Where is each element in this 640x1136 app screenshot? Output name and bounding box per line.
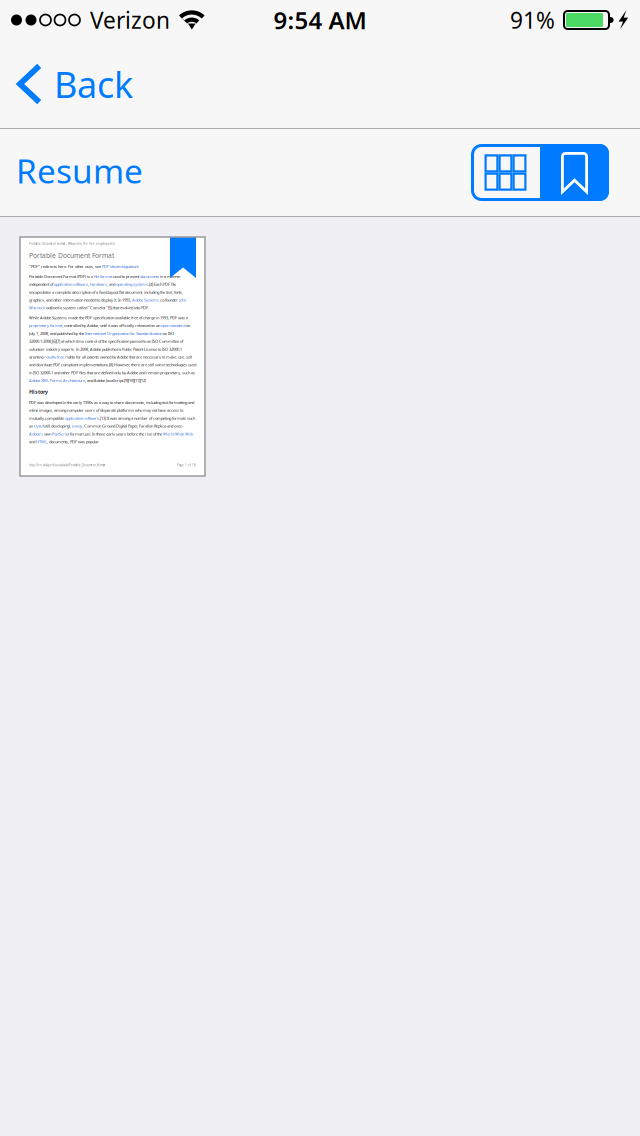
staticText: Portable Document Format [29, 251, 114, 260]
button[interactable]: Back [0, 40, 147, 128]
staticText: PDF was developed in the early 1990s as … [29, 400, 195, 444]
button[interactable]: Portable Document Format - Wikipedia, th… [20, 237, 205, 476]
staticText: Portable Document Format (PDF) is a file… [29, 274, 186, 310]
staticText: 9:54 AM [273, 4, 366, 36]
staticText: Back [54, 60, 133, 108]
staticText: Page 1 of 18 [177, 463, 196, 467]
staticText: History [29, 388, 48, 395]
button[interactable]: Bookmarks [540, 144, 609, 201]
button[interactable]: Grid view [471, 144, 540, 201]
staticText: While Adobe Systems made the PDF specifi… [29, 315, 196, 383]
staticText: "PDF" redirects here. For other uses, se… [29, 264, 139, 269]
staticText: 91% [510, 5, 555, 35]
staticText: http://en.wikipedia.org/wiki/Portable_Do… [29, 463, 105, 467]
staticText: Verizon [90, 5, 170, 35]
staticText: Resume [16, 148, 143, 193]
staticText: Portable Document Format - Wikipedia, th… [29, 242, 114, 245]
